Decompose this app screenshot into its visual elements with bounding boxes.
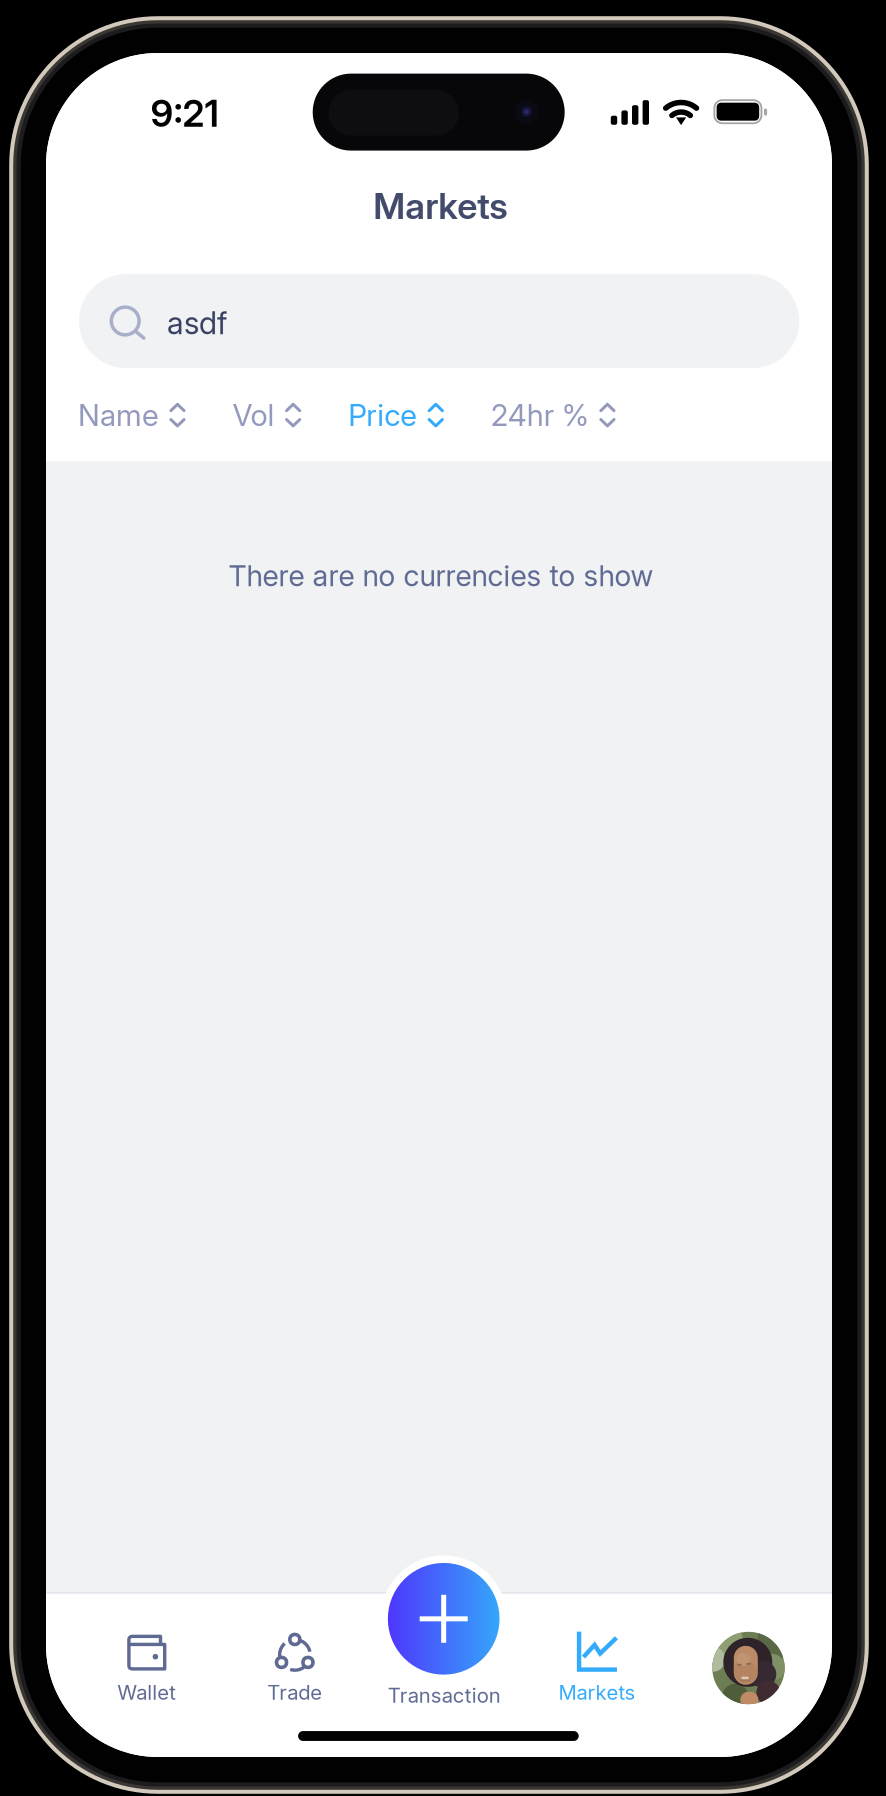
button[interactable]: Profile — [712, 1632, 785, 1704]
staticText: Markets — [373, 184, 507, 228]
staticText: asdf — [167, 304, 227, 342]
staticText: 24hr % — [491, 397, 589, 433]
button[interactable]: Transaction — [370, 1678, 518, 1712]
staticText: Trade — [267, 1680, 322, 1704]
staticText: Vol — [233, 397, 275, 433]
button[interactable]: Trade — [221, 1617, 369, 1727]
staticText: There are no currencies to show — [228, 558, 653, 593]
button[interactable]: Markets — [523, 1617, 671, 1727]
button[interactable]: Vol — [233, 397, 300, 433]
button[interactable]: asdf — [79, 274, 799, 368]
button[interactable]: 24hr % — [491, 397, 614, 433]
staticText: Markets — [558, 1680, 635, 1704]
staticText: 9:21 — [150, 91, 218, 135]
button[interactable]: New transaction — [380, 1555, 507, 1682]
button[interactable]: Price — [348, 397, 442, 433]
staticText: Transaction — [388, 1683, 501, 1708]
button[interactable]: Name — [78, 397, 184, 433]
staticText: Wallet — [117, 1680, 176, 1704]
staticText: Price — [348, 397, 417, 433]
button[interactable]: Wallet — [73, 1617, 221, 1727]
staticText: Name — [78, 397, 159, 433]
